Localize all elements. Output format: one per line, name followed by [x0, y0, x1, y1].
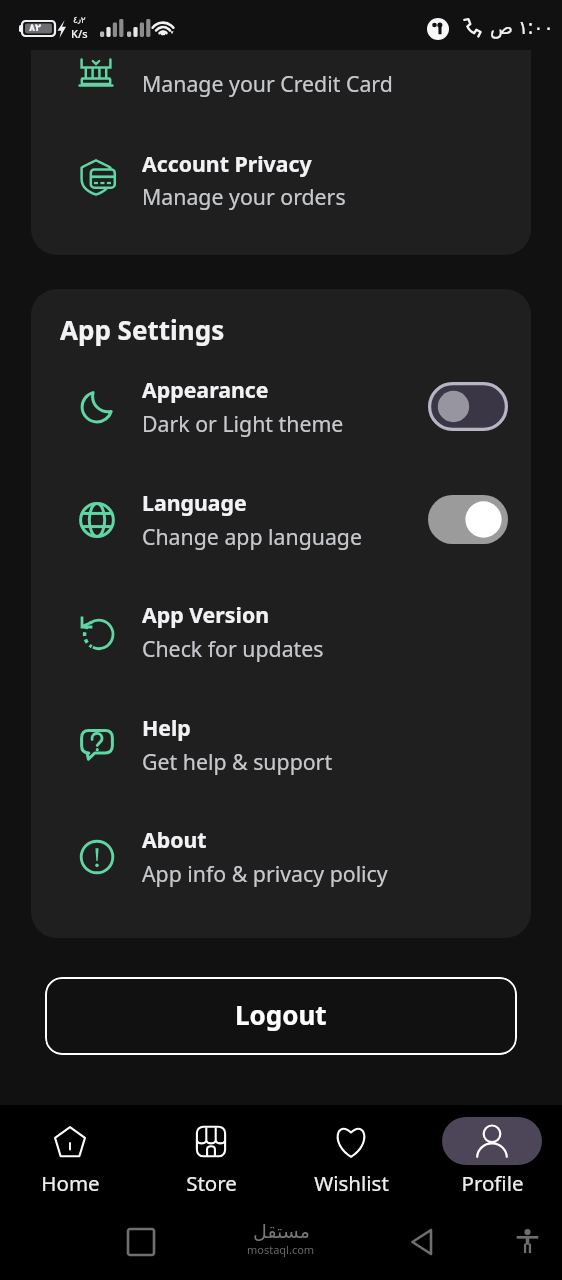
button[interactable]: [31, 355, 531, 468]
staticText: Store: [186, 1169, 237, 1197]
staticText: Dark or Light theme: [142, 409, 344, 438]
staticText: Home: [41, 1169, 100, 1197]
staticText: ٨٢: [29, 22, 42, 34]
staticText: App info & privacy policy: [142, 859, 388, 888]
button[interactable]: Recent apps: [117, 1218, 164, 1265]
staticText: Help: [142, 713, 191, 742]
staticText: Wishlist: [314, 1169, 389, 1197]
button[interactable]: [141, 1105, 282, 1220]
staticText: Appearance: [142, 375, 269, 404]
button[interactable]: Language toggle: [428, 495, 508, 544]
staticText: ١:٠٠ ص: [490, 14, 554, 40]
staticText: App Version: [142, 600, 270, 629]
staticText: Profile: [461, 1169, 524, 1197]
button[interactable]: [422, 1105, 562, 1220]
staticText: K/s: [71, 26, 88, 41]
button[interactable]: Back: [398, 1218, 445, 1265]
button[interactable]: Accessibility: [504, 1218, 551, 1265]
staticText: مستقل: [253, 1220, 310, 1242]
staticText: Account Privacy: [142, 149, 312, 178]
staticText: ٤٫٢: [73, 15, 86, 25]
staticText: Check for updates: [142, 634, 324, 663]
staticText: App Settings: [60, 312, 225, 347]
button[interactable]: [31, 805, 531, 918]
button[interactable]: [31, 693, 531, 806]
staticText: Get help & support: [142, 747, 333, 776]
staticText: Language: [142, 488, 247, 517]
button[interactable]: [281, 1105, 422, 1220]
button[interactable]: [31, 468, 531, 581]
staticText: Change app language: [142, 522, 362, 551]
staticText: About: [142, 825, 207, 854]
button[interactable]: Logout: [45, 977, 517, 1055]
staticText: mostaql.com: [247, 1242, 315, 1257]
button[interactable]: Appearance theme toggle: [428, 382, 508, 431]
staticText: Manage your Credit Card: [142, 69, 393, 98]
staticText: Logout: [235, 997, 327, 1032]
staticText: Manage your orders: [142, 182, 346, 211]
button[interactable]: [0, 1105, 141, 1220]
button[interactable]: [31, 580, 531, 693]
